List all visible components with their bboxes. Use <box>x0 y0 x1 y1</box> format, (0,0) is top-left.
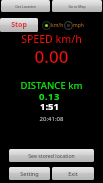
staticText: 20:41:08 <box>0 115 103 123</box>
staticText: mph <box>73 22 84 29</box>
button[interactable]: Exit <box>52 167 94 180</box>
staticText: SPEED km/h <box>0 32 103 46</box>
button[interactable]: See stored location <box>9 149 94 162</box>
button[interactable]: Get Location <box>1 0 50 12</box>
staticText: DISTANCE km <box>0 79 103 92</box>
staticText: 0.13 <box>0 90 101 103</box>
staticText: Stop <box>11 20 27 30</box>
other: mph <box>64 21 73 30</box>
staticText: Setting <box>20 170 39 177</box>
staticText: Exit <box>68 170 78 177</box>
staticText: 0.00 <box>0 45 103 68</box>
button[interactable]: Go to Map <box>52 0 102 12</box>
other: km/h <box>42 21 51 30</box>
button[interactable]: Stop <box>0 18 38 32</box>
button[interactable]: Setting <box>9 167 50 180</box>
staticText: km/h <box>51 22 64 29</box>
staticText: See stored location <box>28 152 75 159</box>
staticText: Get Location <box>15 4 36 9</box>
button[interactable]: mph <box>64 21 84 30</box>
staticText: Go to Map <box>68 4 86 9</box>
staticText: 1:51 <box>0 100 101 113</box>
button[interactable]: km/h <box>42 21 64 30</box>
